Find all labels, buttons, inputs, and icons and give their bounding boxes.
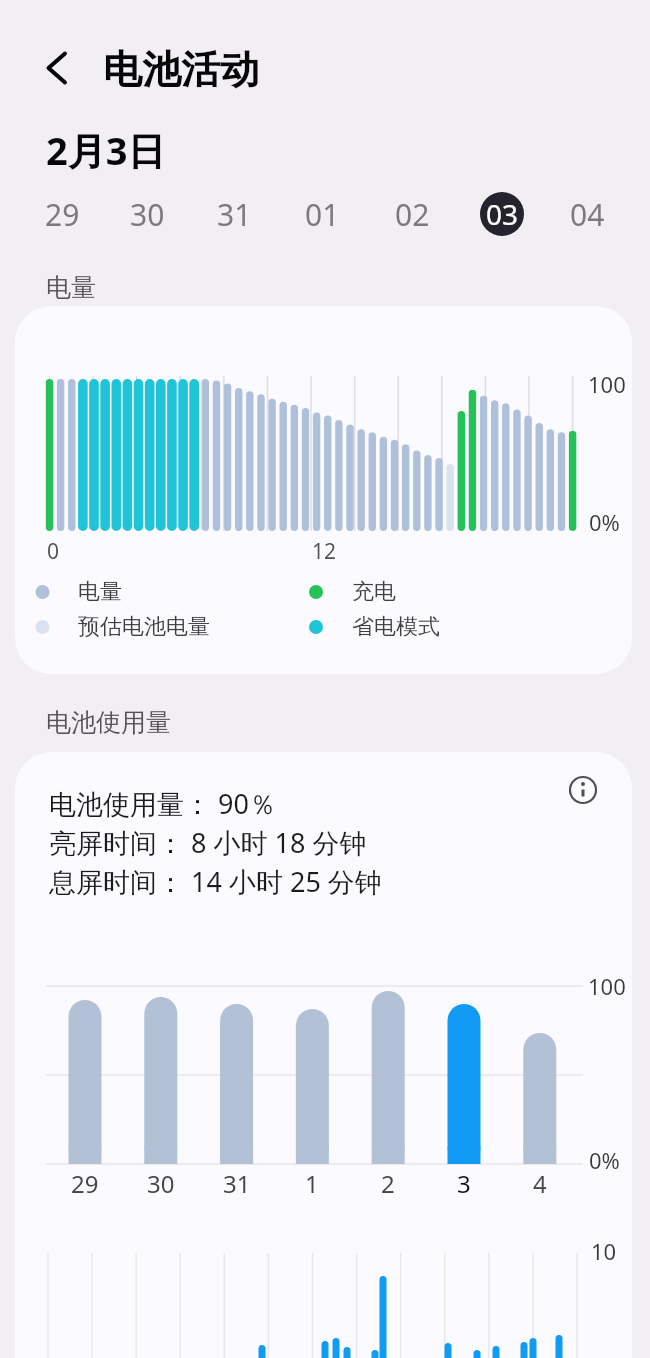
staticText: 电量 [46,272,96,303]
staticText: 2 [381,1167,395,1200]
staticText: 预估电池电量 [78,613,210,641]
button[interactable]: 29 [22,179,102,249]
staticText: 省电模式 [352,613,440,641]
button[interactable]: 01 [282,179,362,249]
button[interactable]: 04 [547,179,627,249]
staticText: 息屏时间： 14 小时 25 分钟 [49,863,382,900]
staticText: 1 [305,1167,319,1200]
staticText: 2月3日 [46,124,166,176]
staticText: 29 [45,194,80,235]
staticText: 4 [533,1167,547,1200]
staticText: 电池使用量 [46,707,171,738]
staticText: 电池使用量： 90％ [49,785,276,822]
staticText: 31 [217,194,252,235]
staticText: 03 [486,195,519,233]
staticText: 04 [570,194,605,235]
staticText: 100 [588,971,626,1001]
staticText: 30 [130,194,165,235]
staticText: 100 [588,369,626,399]
staticText: 亮屏时间： 8 小时 18 分钟 [49,824,367,861]
staticText: 10 [591,1236,617,1266]
staticText: 02 [395,194,430,235]
staticText: 30 [147,1167,175,1200]
staticText: 29 [71,1167,99,1200]
staticText: 充电 [352,578,396,606]
staticText: 0 [47,537,60,566]
button[interactable] [34,44,82,92]
staticText: 电池活动 [103,45,259,94]
staticText: 12 [312,537,337,566]
button[interactable]: 30 [107,179,187,249]
staticText: 3 [457,1167,471,1200]
button[interactable]: 02 [372,179,452,249]
button[interactable] [561,768,605,812]
staticText: 0% [589,507,620,537]
staticText: 电量 [78,578,122,606]
button[interactable]: 31 [194,179,274,249]
staticText: 31 [223,1167,251,1200]
staticText: 0% [589,1145,620,1175]
staticText: 01 [305,194,340,235]
button[interactable]: 03 [462,179,542,249]
